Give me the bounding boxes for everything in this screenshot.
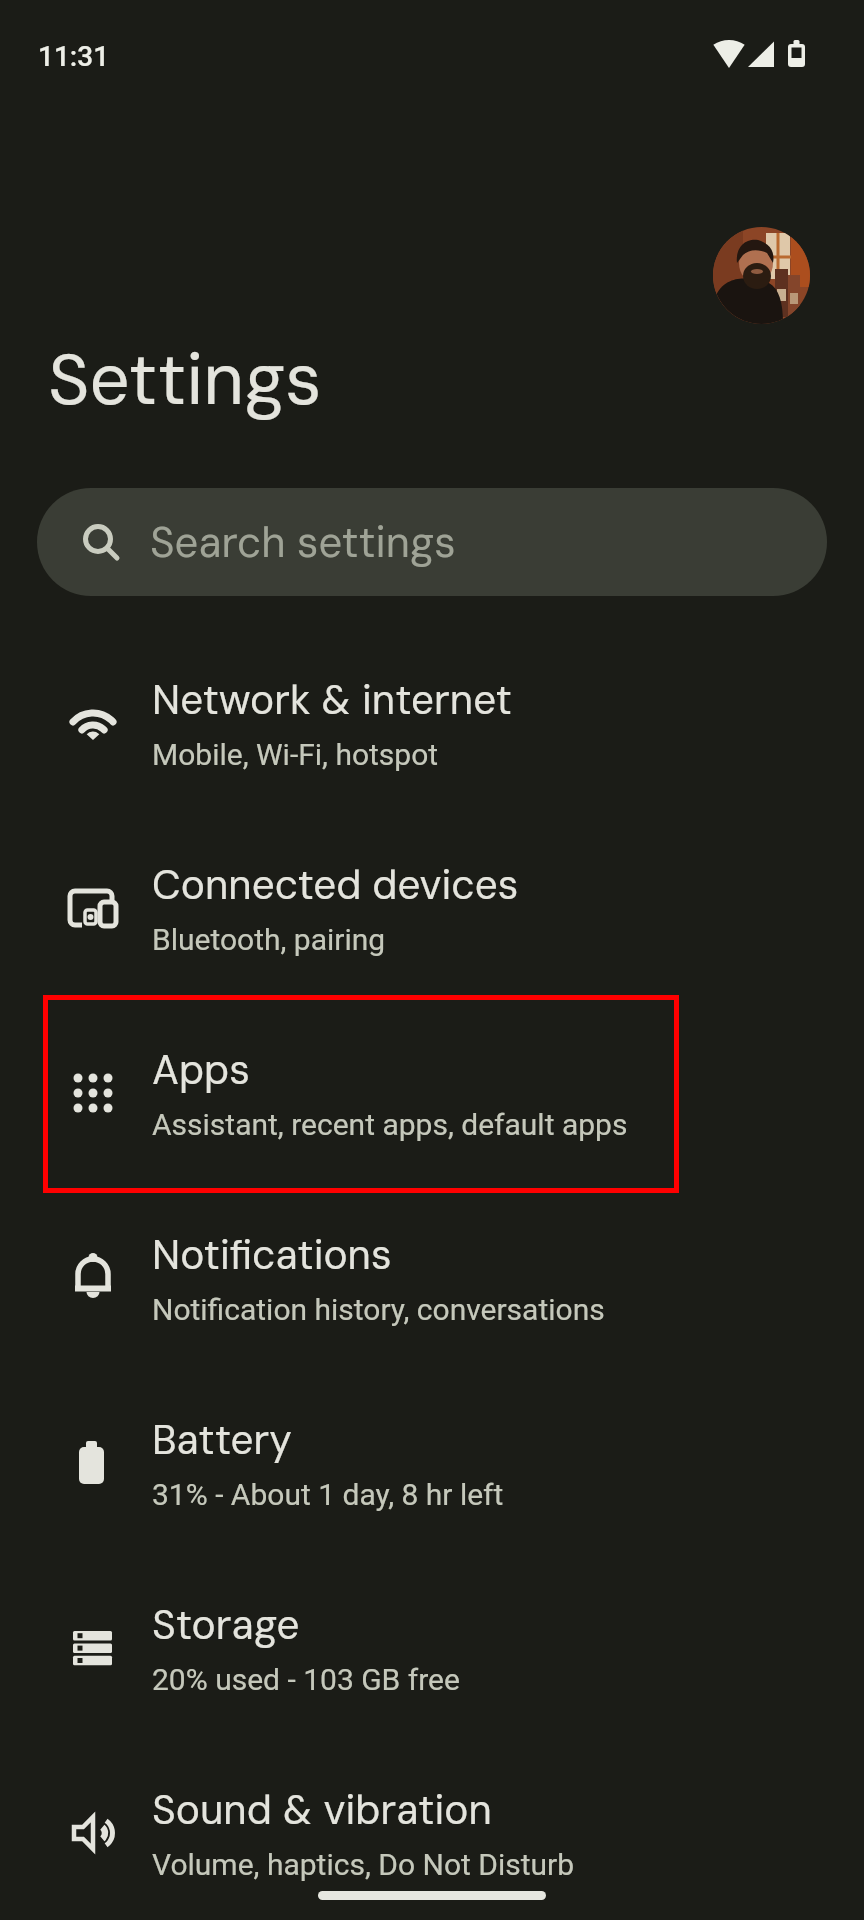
staticText: Battery xyxy=(152,1414,292,1467)
staticText: Settings xyxy=(48,334,322,426)
staticText: Notification history, conversations xyxy=(152,1292,605,1327)
staticText: Storage xyxy=(152,1599,300,1652)
button[interactable] xyxy=(713,227,810,324)
staticText: Assistant, recent apps, default apps xyxy=(152,1107,628,1142)
staticText: 31% - About 1 day, 8 hr left xyxy=(152,1477,504,1512)
staticText: 20% used - 103 GB free xyxy=(152,1662,460,1697)
button[interactable]: Apps xyxy=(0,1000,864,1185)
button[interactable]: Search settings xyxy=(37,488,827,596)
staticText: Sound & vibration xyxy=(152,1784,492,1837)
button[interactable]: Notifications xyxy=(0,1185,864,1370)
staticText: 11:31 xyxy=(38,40,110,73)
button[interactable]: Storage xyxy=(0,1555,864,1740)
staticText: Network & internet xyxy=(152,674,512,727)
staticText: Bluetooth, pairing xyxy=(152,922,386,957)
button[interactable]: Connected devices xyxy=(0,815,864,1000)
button[interactable]: Battery xyxy=(0,1370,864,1555)
button[interactable]: Sound & vibration xyxy=(0,1740,864,1920)
staticText: Connected devices xyxy=(152,859,519,912)
button[interactable]: Network & internet xyxy=(0,630,864,815)
staticText: Volume, haptics, Do Not Disturb xyxy=(152,1847,575,1882)
staticText: Mobile, Wi-Fi, hotspot xyxy=(152,737,439,772)
staticText: Search settings xyxy=(150,515,456,570)
staticText: Notifications xyxy=(152,1229,392,1282)
staticText: Apps xyxy=(152,1044,250,1097)
